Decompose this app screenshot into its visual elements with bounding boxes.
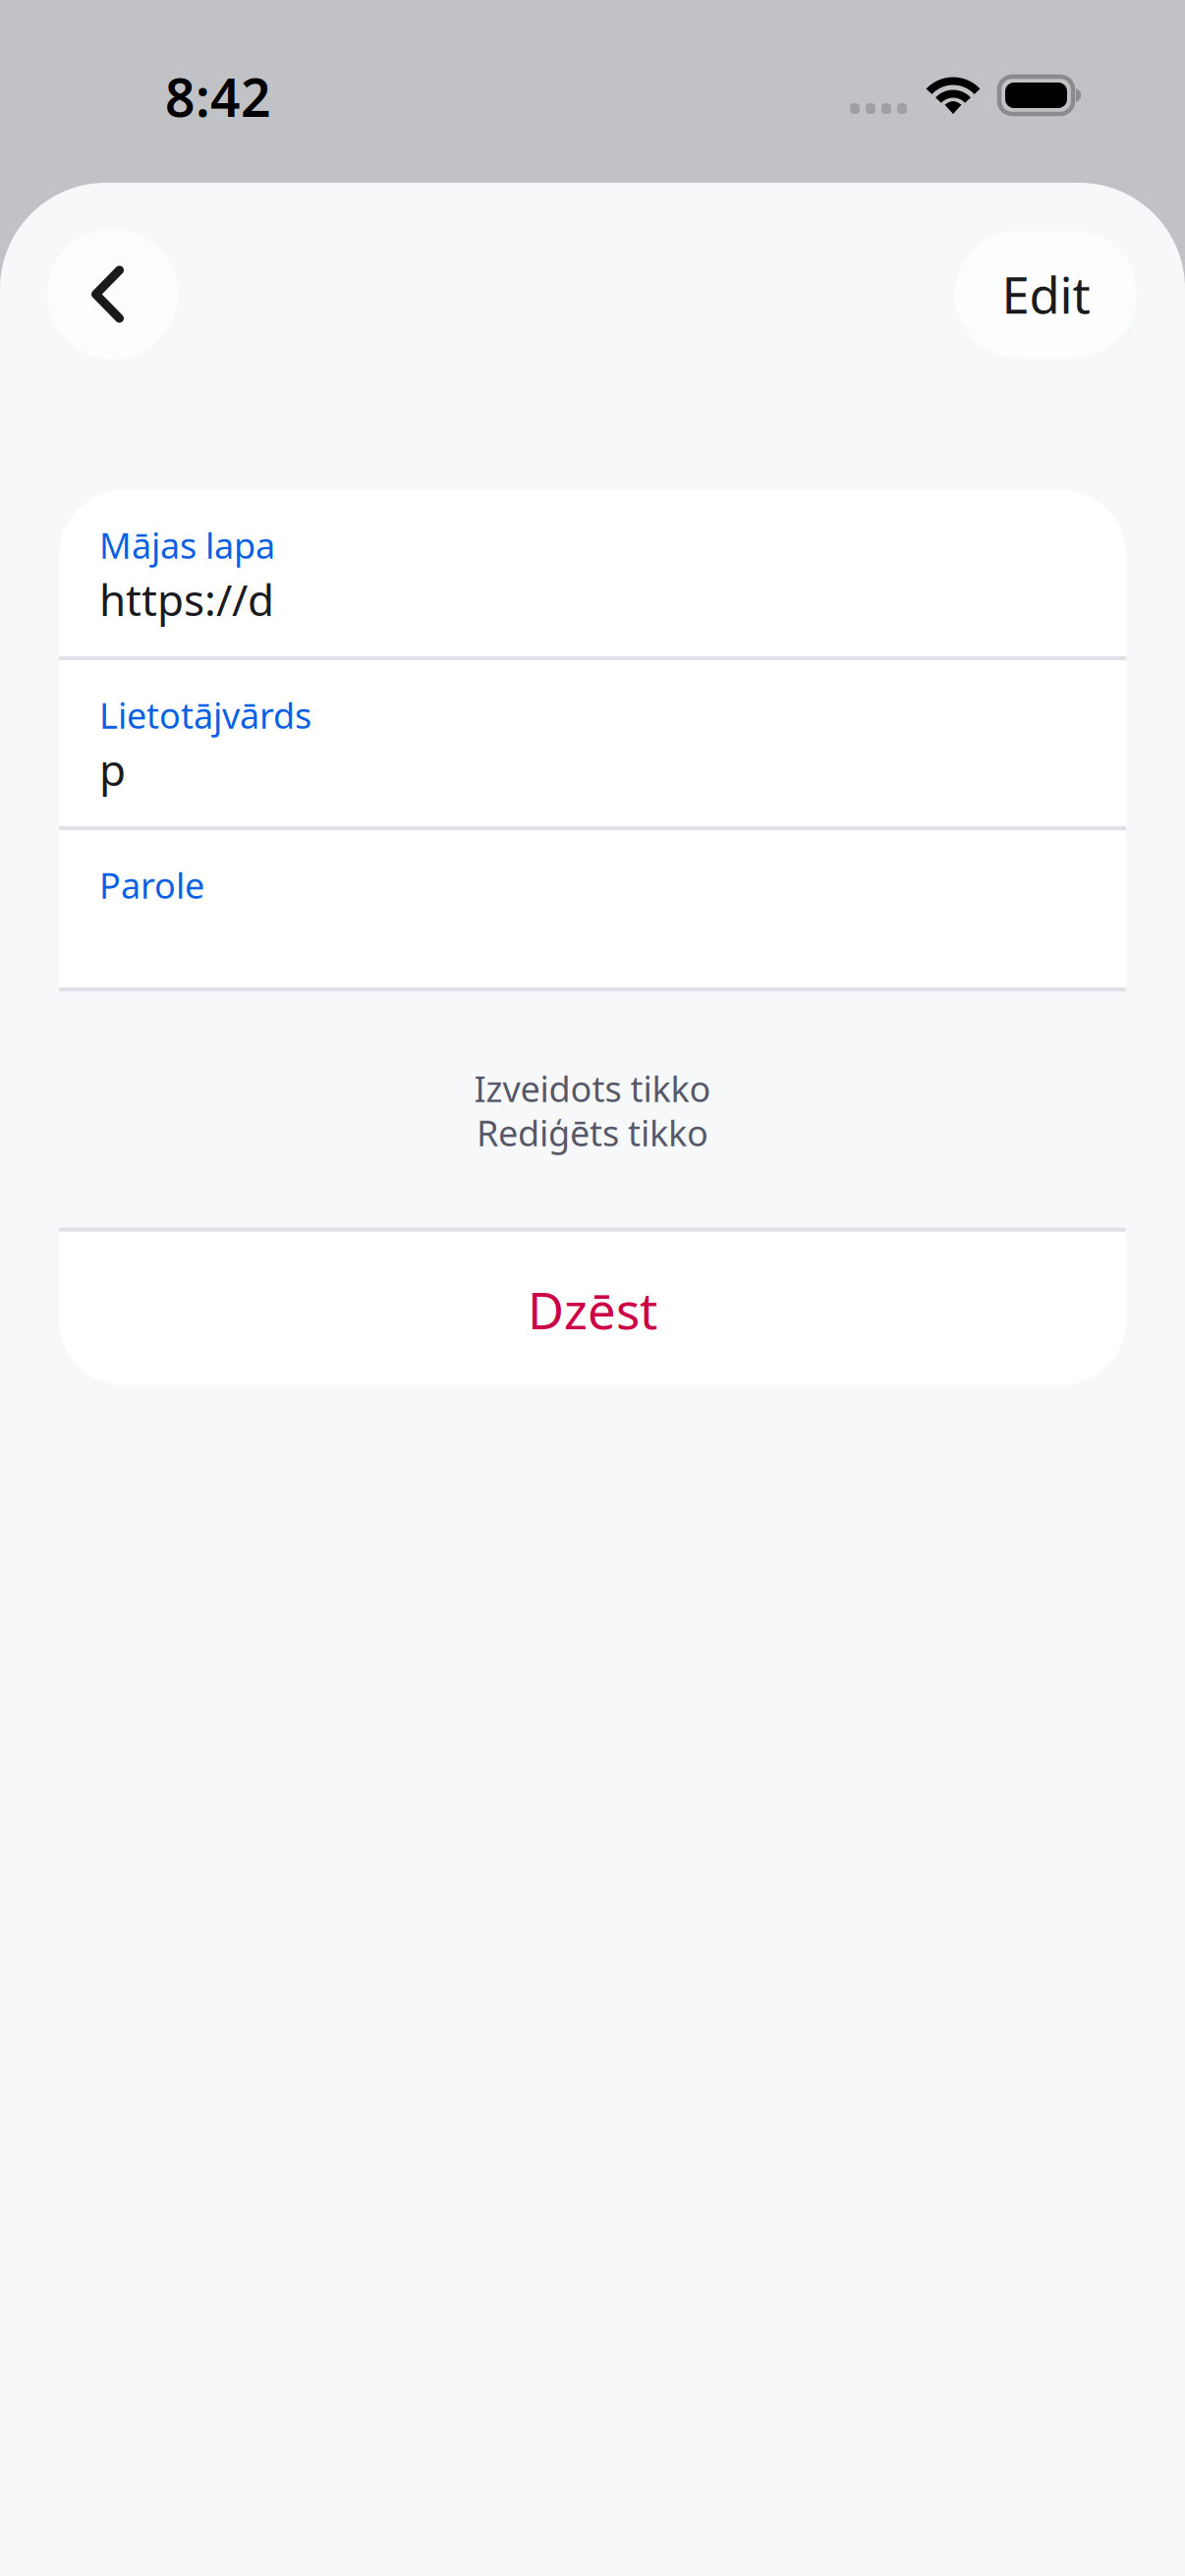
staticText: p — [99, 741, 126, 798]
staticText: 8:42 — [165, 62, 271, 131]
staticText: Parole — [99, 862, 204, 909]
button[interactable]: Back — [47, 229, 178, 360]
button[interactable]: Mājas lapa — [59, 490, 1126, 656]
staticText: Izveidots tikko — [474, 1065, 711, 1112]
staticText: Mājas lapa — [99, 522, 275, 569]
staticText: https://d — [99, 571, 274, 628]
staticText: Rediģēts tikko — [477, 1109, 708, 1156]
button[interactable]: Parole — [59, 830, 1126, 987]
staticText: Edit — [1002, 261, 1090, 327]
button[interactable]: Edit — [955, 230, 1137, 358]
button[interactable]: Dzēst — [59, 1232, 1126, 1385]
staticText: Lietotājvārds — [99, 692, 311, 739]
button[interactable]: Lietotājvārds — [59, 660, 1126, 826]
staticText: Dzēst — [528, 1277, 657, 1343]
